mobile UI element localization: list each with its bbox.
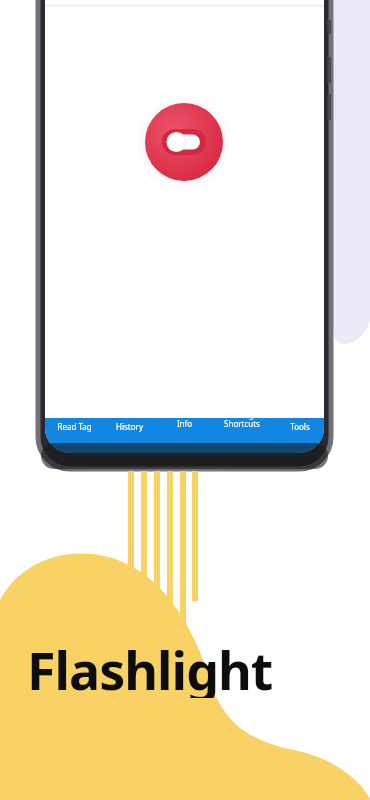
button[interactable]: Tools	[278, 413, 322, 439]
staticText: Flashlight	[27, 634, 273, 698]
staticText: Device Info	[172, 409, 197, 430]
staticText: Read Tag	[57, 421, 92, 432]
button[interactable]: Read Tag	[46, 413, 102, 439]
staticText: Tools	[290, 421, 310, 432]
staticText: History	[116, 421, 143, 432]
button[interactable]: Settings Shortcuts	[212, 406, 272, 432]
button[interactable]: Device Info	[160, 406, 208, 432]
staticText: Settings Shortcuts	[224, 409, 260, 430]
button[interactable]: History	[104, 413, 154, 439]
